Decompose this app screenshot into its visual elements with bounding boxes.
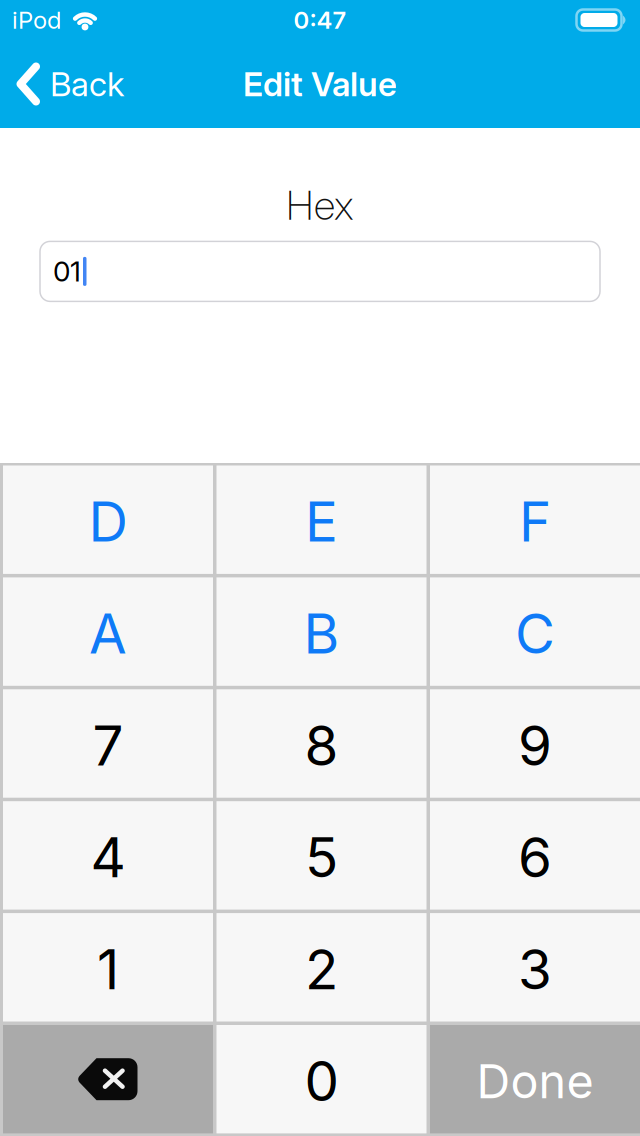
button[interactable]: B xyxy=(216,577,426,686)
button[interactable]: E xyxy=(216,465,426,574)
staticText: 1 xyxy=(97,936,119,1002)
staticText: D xyxy=(88,489,127,555)
staticText: 6 xyxy=(518,824,552,890)
button[interactable]: 8 xyxy=(216,689,426,798)
button[interactable]: 7 xyxy=(3,689,213,798)
staticText: B xyxy=(303,600,339,667)
staticText: 7 xyxy=(92,712,123,778)
staticText: 5 xyxy=(305,824,338,890)
button[interactable]: Back xyxy=(0,62,124,106)
staticText: 0:47 xyxy=(293,5,346,34)
staticText: 0 xyxy=(304,1048,338,1114)
button[interactable]: 1 xyxy=(3,913,213,1021)
staticText: Done xyxy=(476,1053,593,1109)
button[interactable]: 5 xyxy=(216,801,426,910)
button[interactable]: A xyxy=(3,577,213,686)
staticText: F xyxy=(519,489,551,555)
button[interactable]: 2 xyxy=(216,913,426,1021)
staticText: iPod xyxy=(12,5,61,34)
button[interactable]: Delete xyxy=(3,1025,213,1133)
button[interactable]: 4 xyxy=(3,801,213,910)
staticText: 4 xyxy=(90,824,125,890)
button[interactable]: 9 xyxy=(430,689,640,798)
staticText: C xyxy=(515,600,555,667)
staticText: 01 xyxy=(53,254,81,288)
staticText: 8 xyxy=(304,712,338,778)
button[interactable]: 6 xyxy=(430,801,640,910)
staticText: Back xyxy=(50,64,124,104)
staticText: 2 xyxy=(305,936,338,1002)
button[interactable]: 3 xyxy=(430,913,640,1021)
button[interactable]: C xyxy=(430,577,640,686)
button[interactable]: D xyxy=(3,465,213,574)
button[interactable]: 0 xyxy=(216,1025,426,1133)
button[interactable]: Hex value xyxy=(40,241,600,301)
staticText: Edit Value xyxy=(243,64,397,104)
staticText: 3 xyxy=(518,936,552,1002)
staticText: 9 xyxy=(518,712,552,778)
button[interactable]: F xyxy=(430,465,640,574)
button[interactable]: Done xyxy=(430,1025,640,1133)
staticText: Hex xyxy=(286,181,354,229)
staticText: E xyxy=(305,489,338,555)
staticText: A xyxy=(89,600,127,667)
